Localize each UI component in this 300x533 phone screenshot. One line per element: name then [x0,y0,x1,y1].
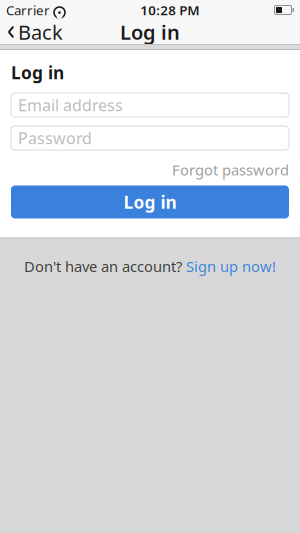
staticText: Carrier [6,1,50,19]
staticText: Log in [120,19,180,45]
staticText: Forgot password [172,160,289,179]
staticText: Sign up now! [186,256,276,276]
button[interactable]: Log in [11,185,289,218]
button[interactable]: Sign up now! [186,256,276,276]
staticText: Don't have an account? [24,256,186,276]
staticText: 10:28 PM [140,1,199,19]
staticText: Back [18,19,63,45]
staticText: Log in [123,190,176,213]
button[interactable]: Back [0,20,70,44]
button[interactable]: Forgot password [11,150,289,185]
staticText: Log in [11,61,64,84]
staticText: Password [18,127,92,149]
staticText: Email address [18,94,123,116]
